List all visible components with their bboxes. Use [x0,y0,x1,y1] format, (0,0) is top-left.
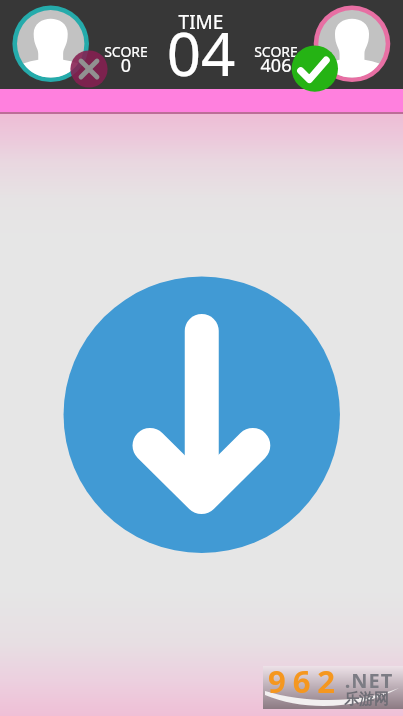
staticText: 04 [151,12,251,94]
staticText: 962 [265,660,345,702]
staticText: 0 [101,53,151,78]
staticText: 乐游网 [342,690,391,709]
staticText: TIME [151,9,251,35]
staticText: SCORE [251,42,301,61]
staticText: .NET [340,667,398,694]
staticText: 406 [251,53,301,78]
staticText: SCORE [101,42,151,61]
button[interactable]: Swipe down [0,0,403,716]
